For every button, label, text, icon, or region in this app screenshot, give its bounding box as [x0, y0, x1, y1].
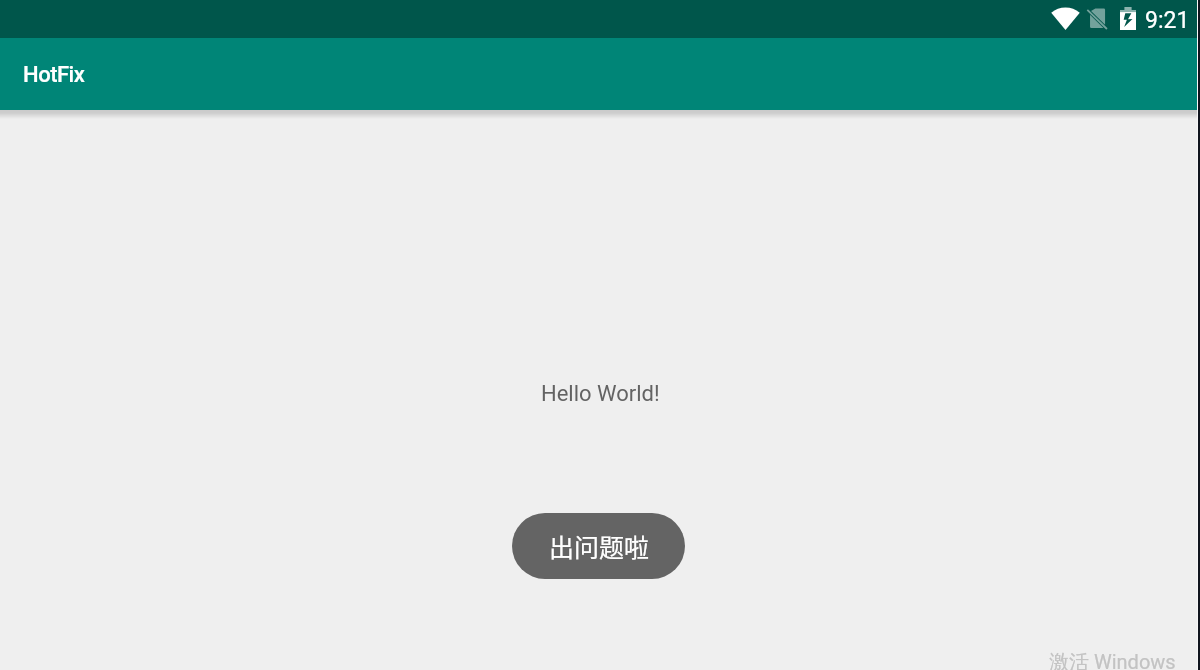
staticText: 激活 Windows: [1049, 650, 1176, 670]
other: Battery charging: [1120, 7, 1136, 30]
staticText: 出问题啦: [549, 528, 650, 564]
button[interactable]: 出问题啦: [512, 513, 685, 579]
staticText: 9:21: [1145, 7, 1190, 34]
other: No SIM card: [1087, 8, 1108, 29]
staticText: Hello World!: [541, 381, 660, 407]
other: Wi-Fi connected: [1052, 8, 1079, 30]
staticText: HotFix: [23, 62, 85, 88]
